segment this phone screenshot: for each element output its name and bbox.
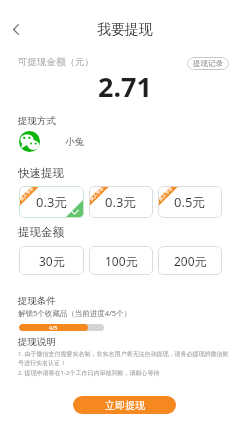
staticText: 小兔: [65, 136, 84, 148]
staticText: 0.3元: [105, 193, 137, 211]
staticText: 0.5元: [174, 193, 206, 211]
staticText: 30元: [39, 253, 65, 269]
staticText: 新人专享: [89, 186, 105, 202]
staticText: 快速提现: [18, 166, 64, 180]
staticText: 立即提现: [105, 399, 145, 412]
button[interactable]: 0.3元: [89, 186, 153, 218]
staticText: 我要提现: [97, 21, 153, 39]
staticText: 0.3元: [36, 193, 68, 211]
button[interactable]: 30元: [19, 246, 84, 275]
button[interactable]: 100元: [89, 246, 153, 275]
staticText: 4/5: [49, 324, 58, 331]
staticText: 提现方式: [18, 115, 56, 127]
staticText: 2. 提现申请将在1-2个工作日内审核到账，请耐心等待: [18, 369, 234, 377]
staticText: 可提现金额（元）: [18, 56, 94, 68]
staticText: 1. 由于微信支付需要实名制，非实名用户将无法自动提现，请务必提现的微信账号进行…: [18, 350, 234, 367]
staticText: 解锁5个收藏品（当前进度4/5个）: [18, 308, 132, 318]
button[interactable]: Back: [3, 16, 29, 42]
button[interactable]: 0.5元: [158, 186, 222, 218]
button[interactable]: 200元: [158, 246, 222, 275]
button[interactable]: 0.3元: [19, 186, 84, 218]
staticText: 提现记录: [193, 59, 223, 68]
staticText: 提现金额: [18, 225, 64, 239]
staticText: 提现条件: [18, 295, 56, 307]
staticText: 100元: [105, 253, 138, 269]
button[interactable]: 提现记录: [187, 57, 229, 70]
staticText: 新人专享: [19, 186, 35, 202]
button[interactable]: 立即提现: [73, 396, 176, 414]
staticText: 200元: [174, 253, 207, 269]
staticText: 新人专享: [158, 186, 174, 202]
staticText: 提现说明: [18, 336, 56, 348]
staticText: 2.71: [98, 68, 152, 105]
